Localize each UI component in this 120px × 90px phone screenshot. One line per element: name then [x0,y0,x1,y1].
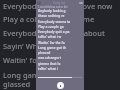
button[interactable]: was schengeri [36,55,84,60]
staticText: Song list [53,1,66,5]
staticText: Play a couple ga [38,25,64,29]
staticText: Everybody quit a pa [38,30,70,34]
button[interactable]: Long game got th [36,45,84,50]
staticText: those nothing re [38,14,65,18]
button[interactable]: Everybody wanna ta [36,19,84,24]
staticText: Everybody wanna talk about [3,28,105,38]
staticText: Sayin' What you want [3,41,80,51]
staticText: I could blow out a lot [38,5,68,9]
staticText: Long game got that [3,70,74,80]
button[interactable]: tellin' what i w [36,34,84,39]
staticText: was schengeri [38,56,61,60]
button[interactable]: gimme that lo [36,61,84,66]
button[interactable]: tellin' what i [36,66,84,71]
button[interactable]: pleased [36,50,84,55]
staticText: glassed [3,79,31,89]
staticText: Waitin' for the fa [38,41,65,45]
staticText: Anybody lookin g [38,9,66,13]
button[interactable]: those nothing re [36,13,84,18]
staticText: Everybody lookin' for love now [3,1,113,11]
staticText: Play a cold game with me [3,14,95,24]
button[interactable]: Everybody quit a pa [36,29,84,34]
staticText: tellin' what i [38,67,58,71]
button[interactable]: Play a couple ga [36,24,84,29]
staticText: gimme that lo [38,62,61,66]
button[interactable]: Profile [37,1,41,5]
button[interactable]: Play [57,82,64,89]
staticText: Everybody wanna ta [38,20,71,24]
staticText: Long game got th [38,46,67,50]
button[interactable]: More [79,2,83,4]
staticText: pleased [38,51,51,55]
button[interactable]: Waitin' for the fa [36,40,84,45]
staticText: tellin' what i w [38,35,62,39]
staticText: Waitin' for the talkin' [3,55,78,65]
button[interactable]: Anybody lookin g [36,8,84,13]
